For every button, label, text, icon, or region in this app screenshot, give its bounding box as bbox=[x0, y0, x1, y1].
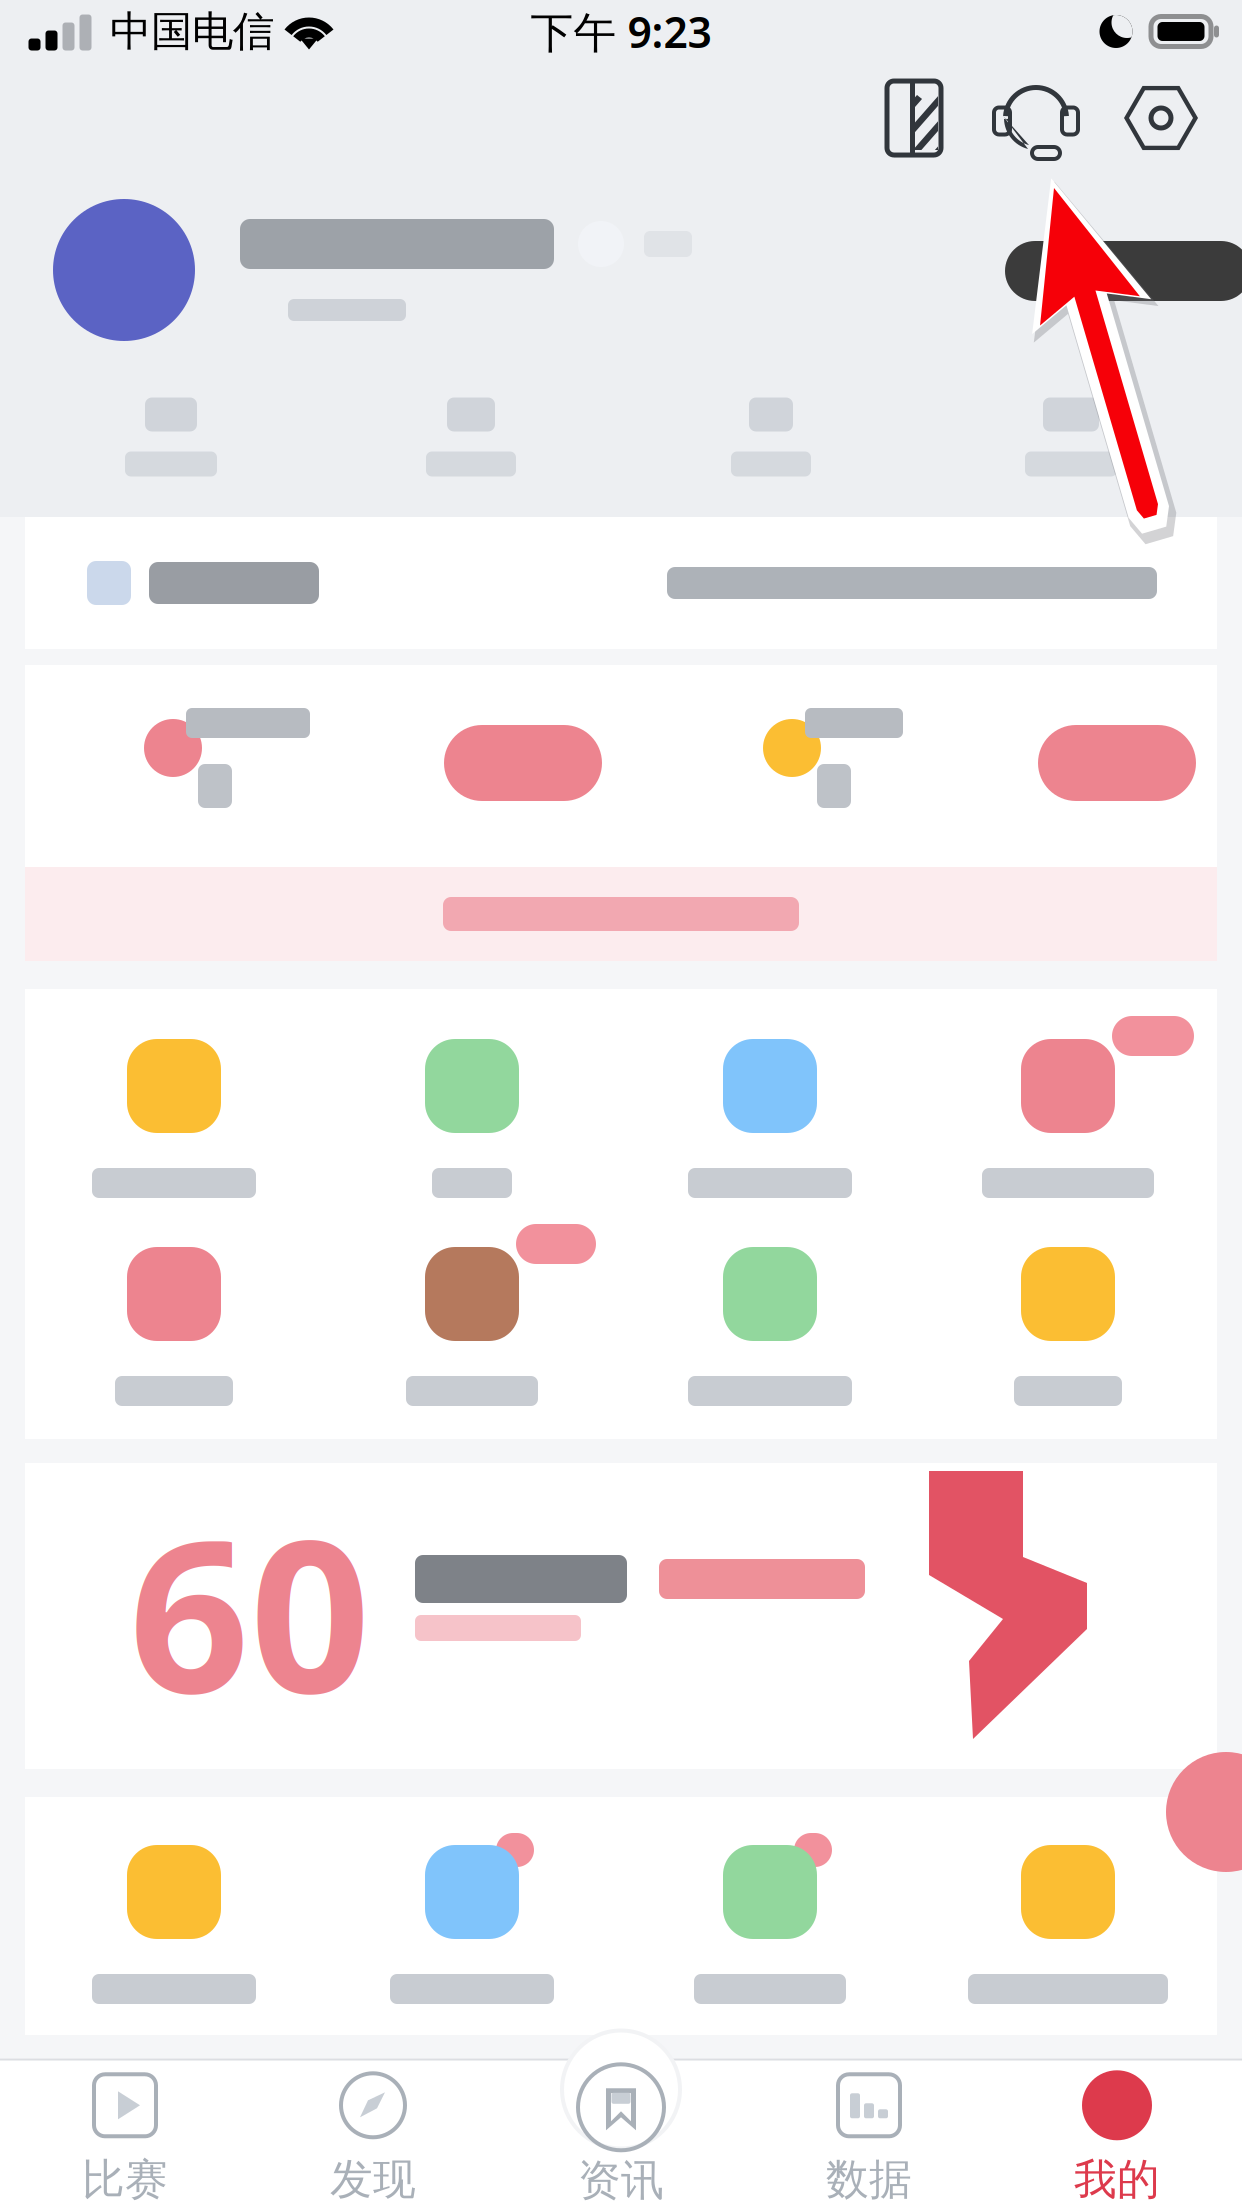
button[interactable] bbox=[763, 705, 1013, 823]
button[interactable] bbox=[621, 1812, 919, 2020]
staticText: 60 bbox=[129, 1471, 371, 1751]
button[interactable] bbox=[25, 1812, 323, 2020]
button[interactable]: 60 bbox=[25, 1463, 1217, 1769]
button[interactable]: Claim coupon bbox=[444, 725, 602, 801]
button[interactable] bbox=[323, 1006, 621, 1214]
button[interactable]: Settings bbox=[1100, 62, 1222, 174]
button[interactable]: 比赛 bbox=[1, 2060, 249, 2208]
button[interactable]: 数据 bbox=[745, 2060, 993, 2208]
button[interactable]: Profile photo bbox=[53, 199, 195, 341]
button[interactable] bbox=[919, 1812, 1217, 2020]
button[interactable] bbox=[921, 371, 1221, 503]
button[interactable]: Membership bbox=[1005, 241, 1242, 301]
button[interactable] bbox=[25, 867, 1217, 961]
button[interactable] bbox=[321, 371, 621, 503]
button[interactable] bbox=[621, 1006, 919, 1214]
button[interactable]: 发现 bbox=[249, 2060, 497, 2208]
staticText: 资讯 bbox=[578, 2154, 664, 2207]
button[interactable] bbox=[25, 1214, 323, 1422]
button[interactable] bbox=[21, 371, 321, 503]
button[interactable]: Account name bbox=[240, 219, 720, 359]
button[interactable]: My tickets bbox=[856, 62, 972, 174]
button[interactable] bbox=[25, 1006, 323, 1214]
button[interactable] bbox=[919, 1006, 1217, 1214]
button[interactable]: Quick action bbox=[1166, 1752, 1242, 1872]
button[interactable]: Claim reward bbox=[1038, 725, 1196, 801]
button[interactable] bbox=[25, 517, 1217, 649]
button[interactable] bbox=[144, 705, 394, 823]
staticText: 数据 bbox=[826, 2153, 912, 2206]
button[interactable]: Customer service bbox=[972, 62, 1100, 174]
button[interactable] bbox=[323, 1812, 621, 2020]
staticText: 中国电信 bbox=[110, 6, 274, 57]
button[interactable] bbox=[919, 1214, 1217, 1422]
staticText: 发现 bbox=[330, 2153, 416, 2206]
staticText: 下午 9:23 bbox=[530, 3, 711, 60]
button[interactable]: 资讯 bbox=[497, 2060, 745, 2208]
staticText: 比赛 bbox=[82, 2153, 168, 2206]
button[interactable] bbox=[621, 371, 921, 503]
button[interactable] bbox=[323, 1214, 621, 1422]
staticText: 我的 bbox=[1074, 2153, 1160, 2206]
button[interactable]: 我的 bbox=[993, 2060, 1241, 2208]
button[interactable] bbox=[621, 1214, 919, 1422]
